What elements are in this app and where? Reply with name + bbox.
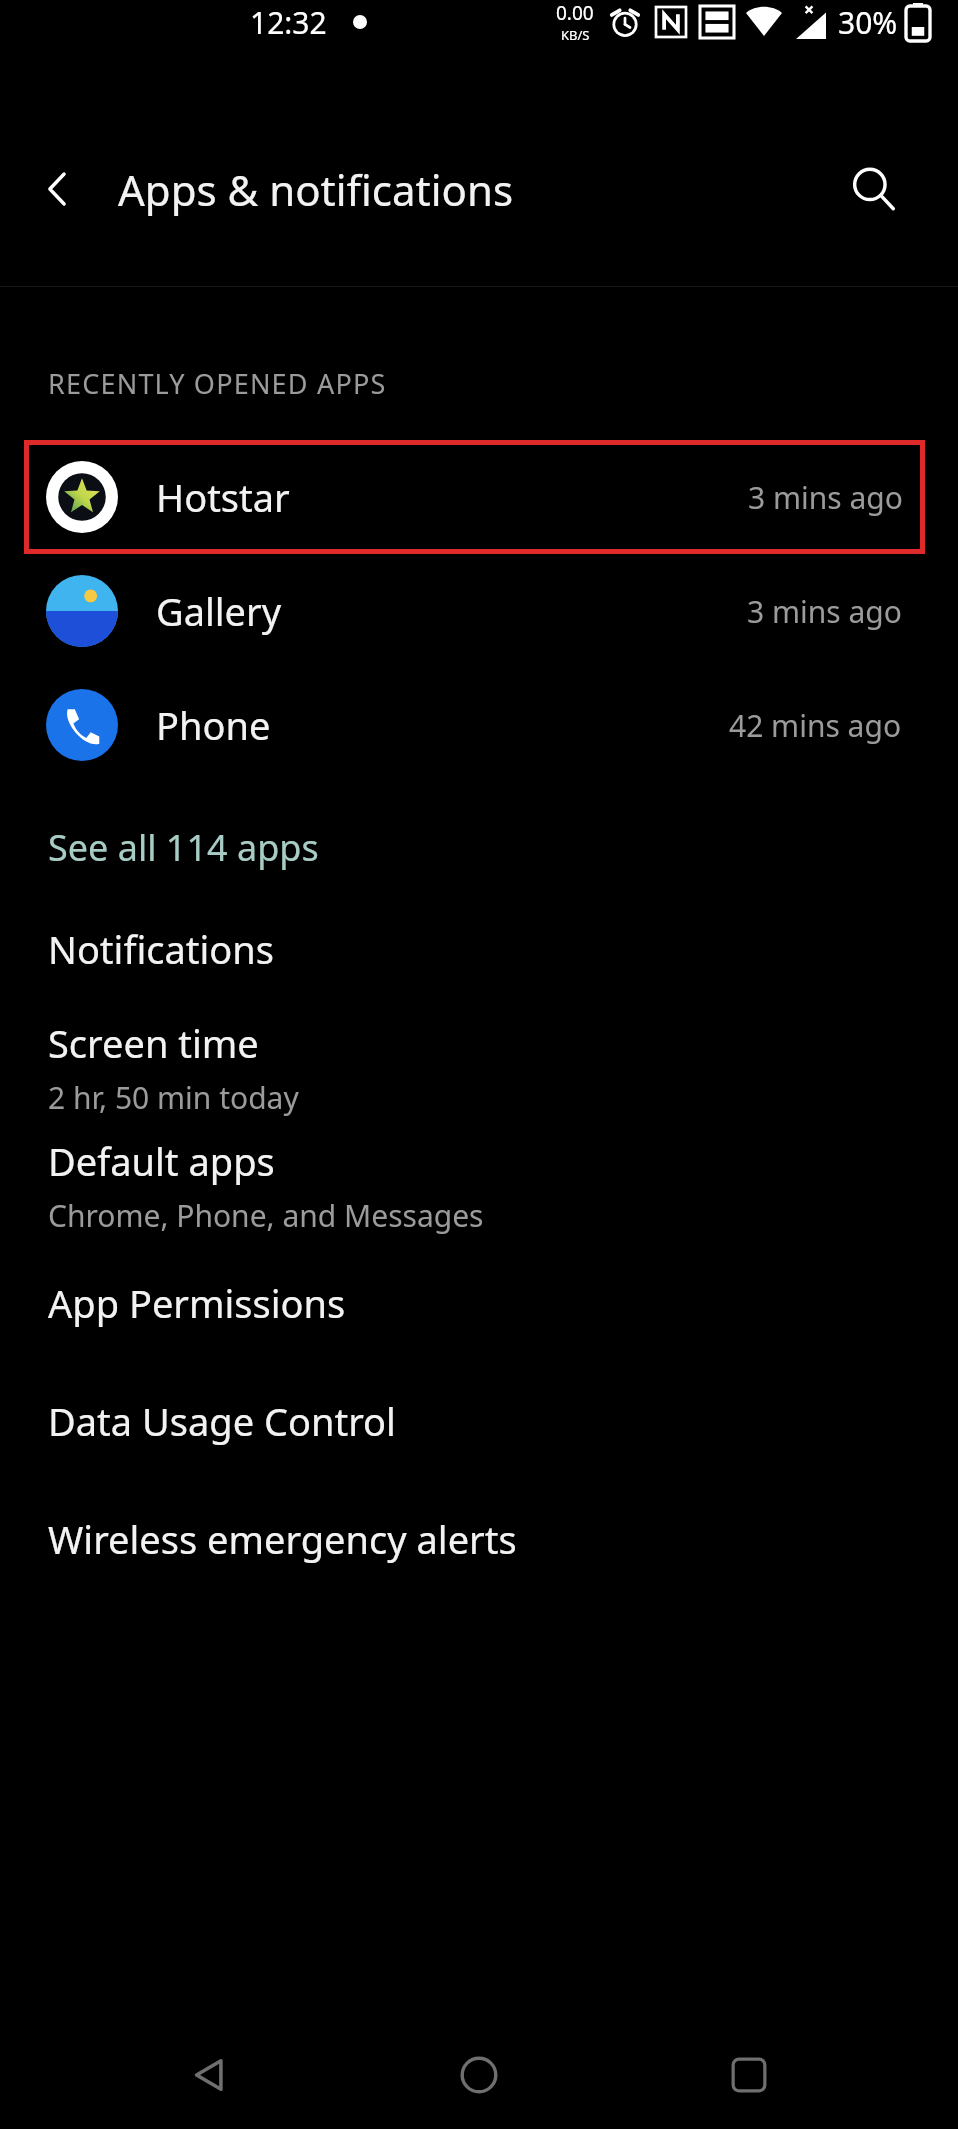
- button[interactable]: See all 114 apps: [0, 804, 958, 890]
- button[interactable]: App Permissions: [0, 1244, 958, 1362]
- staticText: 0.00: [556, 0, 594, 26]
- staticText: Data Usage Control: [48, 1395, 396, 1447]
- button[interactable]: Recent apps: [689, 2021, 809, 2129]
- staticText: Gallery: [156, 585, 282, 637]
- button[interactable]: Default apps: [0, 1126, 958, 1244]
- staticText: Apps & notifications: [118, 161, 514, 218]
- button[interactable]: Data Usage Control: [0, 1362, 958, 1480]
- button[interactable]: Screen time: [0, 1008, 958, 1126]
- staticText: 42 mins ago: [729, 705, 902, 746]
- button[interactable]: Gallery: [0, 554, 958, 668]
- button[interactable]: Search: [832, 147, 916, 231]
- button[interactable]: Hotstar: [24, 440, 925, 554]
- staticText: Phone: [156, 699, 271, 751]
- staticText: Screen time: [48, 1017, 259, 1069]
- staticText: Wireless emergency alerts: [48, 1513, 517, 1565]
- button[interactable]: Wireless emergency alerts: [0, 1480, 958, 1598]
- staticText: 2 hr, 50 min today: [48, 1077, 299, 1118]
- staticText: See all 114 apps: [48, 823, 319, 872]
- staticText: 12:32: [250, 2, 327, 43]
- button[interactable]: Home: [419, 2021, 539, 2129]
- button[interactable]: Phone: [0, 668, 958, 782]
- button[interactable]: Notifications: [0, 890, 958, 1008]
- staticText: 30%: [838, 2, 898, 43]
- staticText: Notifications: [48, 923, 275, 975]
- staticText: Default apps: [48, 1135, 275, 1187]
- staticText: KB/S: [561, 26, 590, 44]
- button[interactable]: Back: [18, 149, 98, 229]
- staticText: 3 mins ago: [748, 477, 903, 518]
- button[interactable]: Back: [150, 2021, 270, 2129]
- staticText: Chrome, Phone, and Messages: [48, 1195, 484, 1236]
- staticText: App Permissions: [48, 1277, 346, 1329]
- staticText: Hotstar: [156, 471, 290, 523]
- staticText: RECENTLY OPENED APPS: [48, 365, 387, 402]
- staticText: 3 mins ago: [747, 591, 902, 632]
